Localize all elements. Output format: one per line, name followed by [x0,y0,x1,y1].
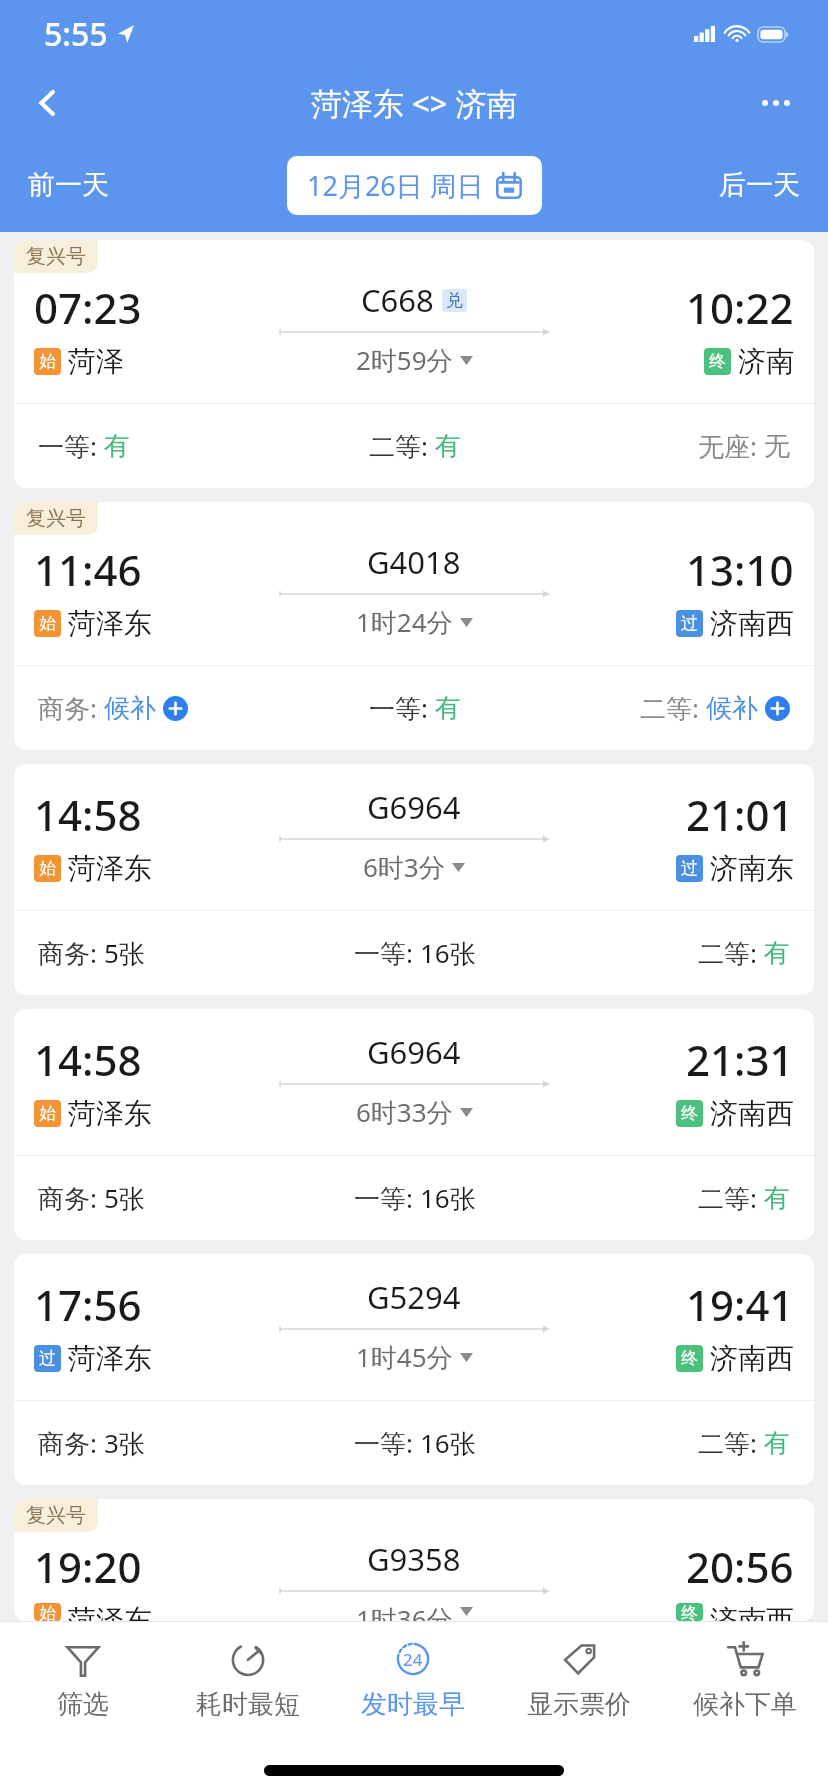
staticText: G6964 [367,786,461,828]
staticText: 一等: [354,935,420,971]
staticText: 始 [39,1603,56,1621]
button[interactable]: 一等: [350,931,480,975]
staticText: 商务: [38,690,104,726]
staticText: 6时3分 [363,849,445,885]
staticText: 始 [39,613,56,634]
staticText: 6时33分 [356,1094,453,1130]
button[interactable]: 二等: [636,686,794,730]
staticText: 济南西 [710,1341,794,1376]
staticText: 显示票价 [527,1688,631,1721]
staticText: 候补 [706,692,758,725]
button[interactable]: 复兴号 [14,502,814,750]
staticText: 有 [435,430,461,463]
staticText: 济南西 [710,1603,794,1621]
staticText: G9358 [367,1538,461,1580]
staticText: 19:20 [34,1538,142,1595]
staticText: 始 [39,351,56,372]
button[interactable]: 二等: [694,1176,794,1220]
button[interactable]: 商务: [34,931,149,975]
button[interactable]: 复兴号 [14,240,814,488]
staticText: 过 [681,858,698,879]
staticText: 复兴号 [26,506,86,531]
button[interactable]: 商务: [34,1176,149,1220]
button[interactable]: 12月26日 周日 [287,156,542,215]
staticText: 5张 [104,1180,145,1216]
staticText: G5294 [367,1276,461,1318]
button[interactable]: 14:58 [14,1009,814,1240]
staticText: 11:46 [34,541,142,598]
button[interactable]: 一等: [365,686,465,730]
staticText: 13:10 [686,541,794,598]
staticText: 21:31 [686,1031,794,1088]
button[interactable]: 耗时最短 [165,1622,330,1748]
staticText: 一等: [354,1180,420,1216]
staticText: 有 [435,692,461,725]
button[interactable]: 一等: [350,1176,480,1220]
staticText: 16张 [420,1180,476,1216]
staticText: 无 [764,430,790,463]
staticText: 14:58 [34,786,142,843]
button[interactable]: 商务: [34,1421,149,1465]
button[interactable]: 无座: [694,424,794,468]
staticText: 菏泽东 <> 济南 [311,82,518,124]
button[interactable]: 候补下单 [662,1622,828,1748]
button[interactable]: 商务: [34,686,192,730]
staticText: 5张 [104,935,145,971]
staticText: 有 [764,1427,790,1460]
staticText: 终 [681,1348,698,1369]
staticText: 兑 [446,290,463,311]
staticText: 菏泽 [68,344,124,379]
staticText: 无座: [698,428,764,464]
staticText: 一等: [38,428,104,464]
staticText: 07:23 [34,279,142,336]
button[interactable]: 17:56 [14,1254,814,1485]
staticText: 1时36分 [356,1601,453,1621]
button[interactable]: 二等: [694,931,794,975]
staticText: 21:01 [686,786,794,843]
staticText: 始 [39,1103,56,1124]
button[interactable]: Back [20,75,76,131]
staticText: 14:58 [34,1031,142,1088]
staticText: 有 [764,937,790,970]
staticText: 菏泽东 [68,606,152,641]
staticText: 复兴号 [26,244,86,269]
button[interactable]: 前一天 [14,156,123,214]
staticText: 后一天 [719,168,800,202]
staticText: 菏泽东 [68,1341,152,1376]
staticText: 济南 [738,344,794,379]
button[interactable]: 显示票价 [496,1622,662,1748]
staticText: 1时24分 [356,604,453,640]
staticText: 商务: [38,935,104,971]
staticText: 终 [681,1103,698,1124]
staticText: 2时59分 [356,342,453,378]
staticText: 候补 [104,692,156,725]
staticText: 候补下单 [693,1688,797,1721]
button[interactable]: 筛选 [0,1622,165,1748]
button[interactable]: 后一天 [705,156,814,214]
staticText: 19:41 [686,1276,794,1333]
button[interactable]: 复兴号 [14,1499,814,1621]
staticText: 济南西 [710,606,794,641]
staticText: 筛选 [57,1688,109,1721]
staticText: 3张 [104,1425,145,1461]
staticText: 商务: [38,1180,104,1216]
staticText: 菏泽东 [68,851,152,886]
staticText: 终 [681,1603,698,1621]
staticText: G4018 [367,541,461,583]
button[interactable]: More options [748,75,804,131]
staticText: 1时45分 [356,1339,453,1375]
staticText: 有 [764,1182,790,1215]
staticText: 20:56 [686,1538,794,1595]
staticText: 二等: [698,935,764,971]
staticText: 商务: [38,1425,104,1461]
staticText: 终 [709,351,726,372]
staticText: 一等: [369,690,435,726]
staticText: 始 [39,858,56,879]
staticText: 16张 [420,935,476,971]
button[interactable]: 二等: [694,1421,794,1465]
button[interactable]: 一等: [350,1421,480,1465]
button[interactable]: 二等: [365,424,465,468]
button[interactable]: 24 [330,1622,496,1748]
button[interactable]: 一等: [34,424,134,468]
button[interactable]: 14:58 [14,764,814,995]
